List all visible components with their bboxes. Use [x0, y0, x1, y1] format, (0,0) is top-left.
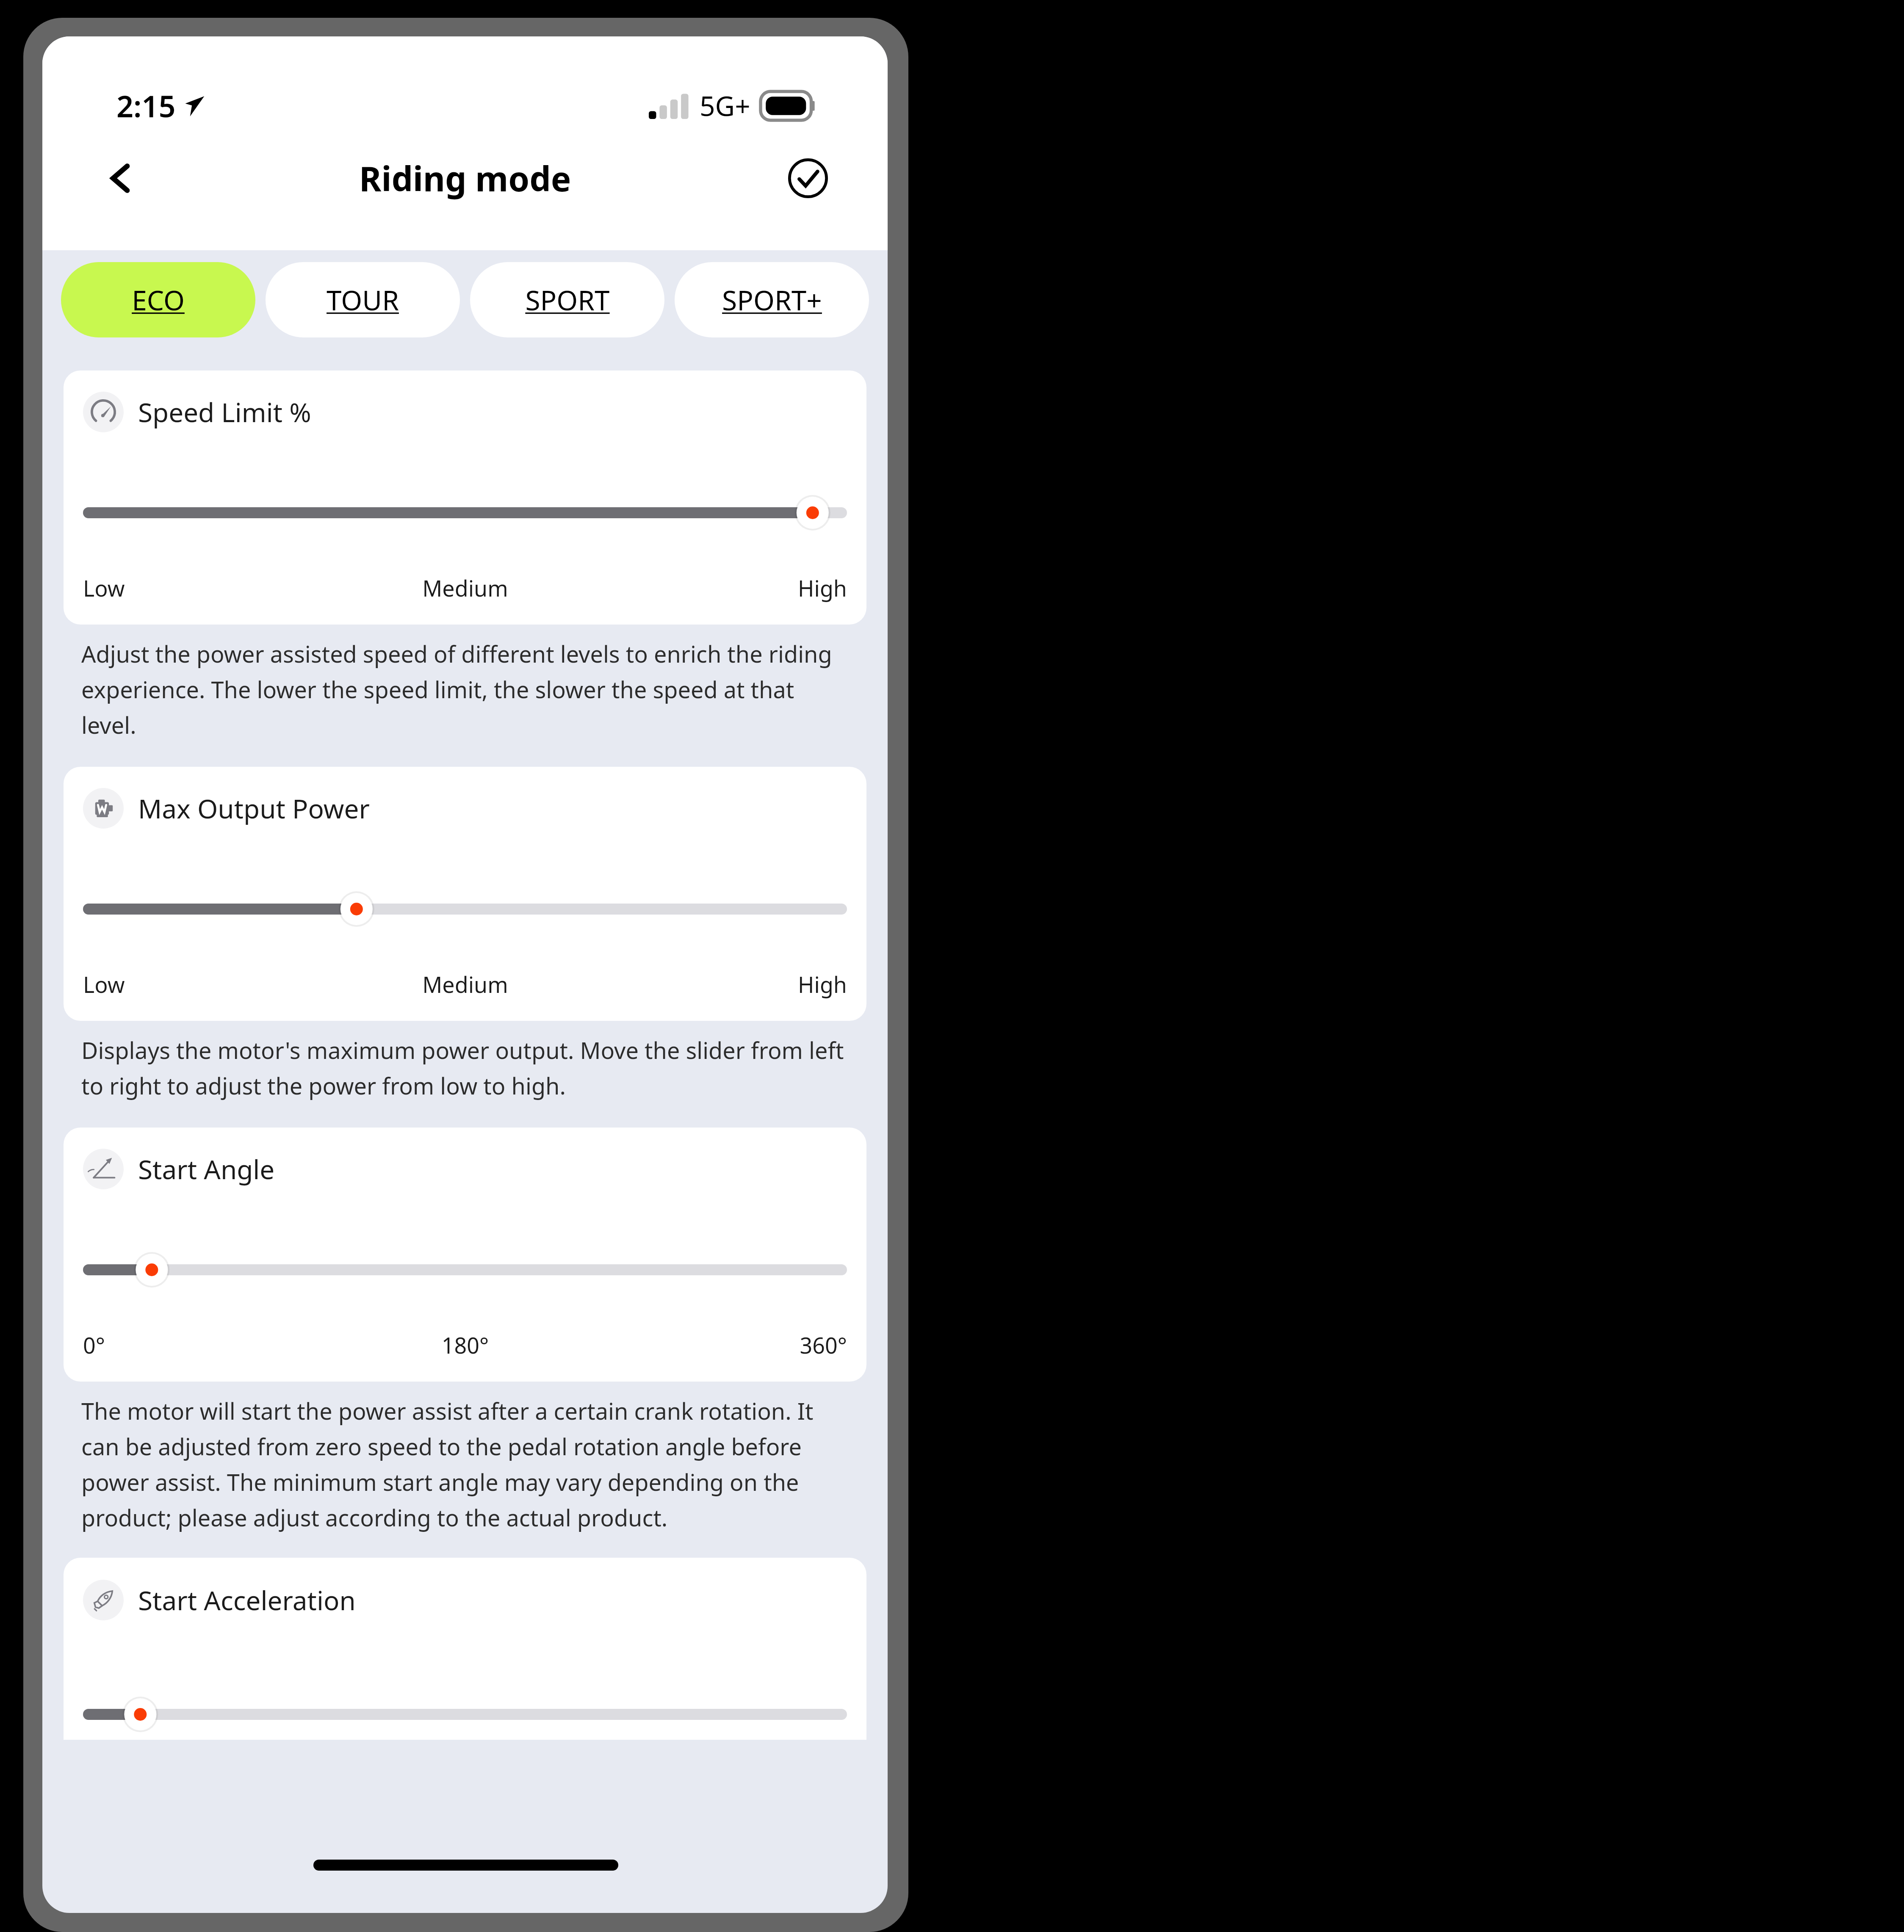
button[interactable]: TOUR [266, 262, 460, 337]
staticText: Speed Limit % [138, 394, 311, 430]
staticText: The motor will start the power assist af… [81, 1395, 849, 1533]
staticText: High [592, 969, 847, 999]
button[interactable]: Confirm [782, 152, 834, 205]
staticText: SPORT+ [722, 282, 822, 318]
button[interactable]: Start Angle [64, 1128, 866, 1382]
button[interactable] [83, 492, 847, 534]
button[interactable]: Max Output Power [64, 767, 866, 1021]
staticText: 180° [338, 1330, 592, 1360]
button[interactable]: Back [96, 153, 146, 203]
staticText: 360° [592, 1330, 847, 1360]
staticText: Low [83, 573, 338, 603]
button[interactable] [83, 1693, 847, 1736]
button[interactable]: SPORT [470, 262, 664, 337]
staticText: 0° [83, 1330, 338, 1360]
staticText: Start Angle [138, 1151, 275, 1187]
staticText: 2:15 [116, 86, 176, 126]
staticText: High [592, 573, 847, 603]
staticText: Adjust the power assisted speed of diffe… [81, 638, 849, 741]
button[interactable]: Start Acceleration [64, 1558, 866, 1740]
staticText: Riding mode [359, 155, 571, 201]
button[interactable]: Speed Limit % [64, 370, 866, 625]
staticText: Start Acceleration [138, 1582, 356, 1618]
staticText: 5G+ [700, 87, 750, 124]
staticText: Displays the motor's maximum power outpu… [81, 1034, 849, 1101]
button[interactable] [83, 1249, 847, 1291]
button[interactable] [83, 888, 847, 930]
staticText: SPORT [525, 282, 610, 318]
staticText: Low [83, 969, 338, 999]
button[interactable]: ECO [61, 262, 255, 337]
staticText: Medium [338, 573, 592, 603]
staticText: Medium [338, 969, 592, 999]
button[interactable]: SPORT+ [675, 262, 869, 337]
staticText: TOUR [327, 282, 399, 318]
staticText: ECO [132, 282, 185, 318]
staticText: Max Output Power [138, 790, 370, 826]
